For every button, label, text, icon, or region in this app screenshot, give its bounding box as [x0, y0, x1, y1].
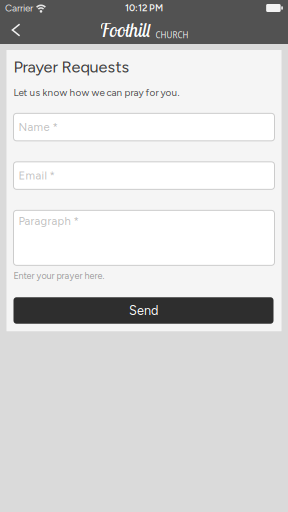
staticText: Email *	[18, 169, 54, 182]
button[interactable]: Send	[13, 297, 273, 324]
staticText: 10:12 PM	[125, 2, 163, 14]
staticText: Carrier	[5, 2, 33, 14]
staticText: Prayer Requests	[13, 57, 129, 76]
staticText: Name *	[18, 120, 57, 134]
staticText: Paragraph *	[18, 214, 78, 228]
staticText: Foothill	[99, 18, 150, 42]
staticText: Let us know how we can pray for you.	[13, 86, 179, 98]
staticText: Send	[129, 303, 158, 318]
staticText: Enter your prayer here.	[13, 270, 104, 281]
button[interactable]: Back	[0, 16, 32, 44]
staticText: CHURCH	[155, 30, 188, 41]
